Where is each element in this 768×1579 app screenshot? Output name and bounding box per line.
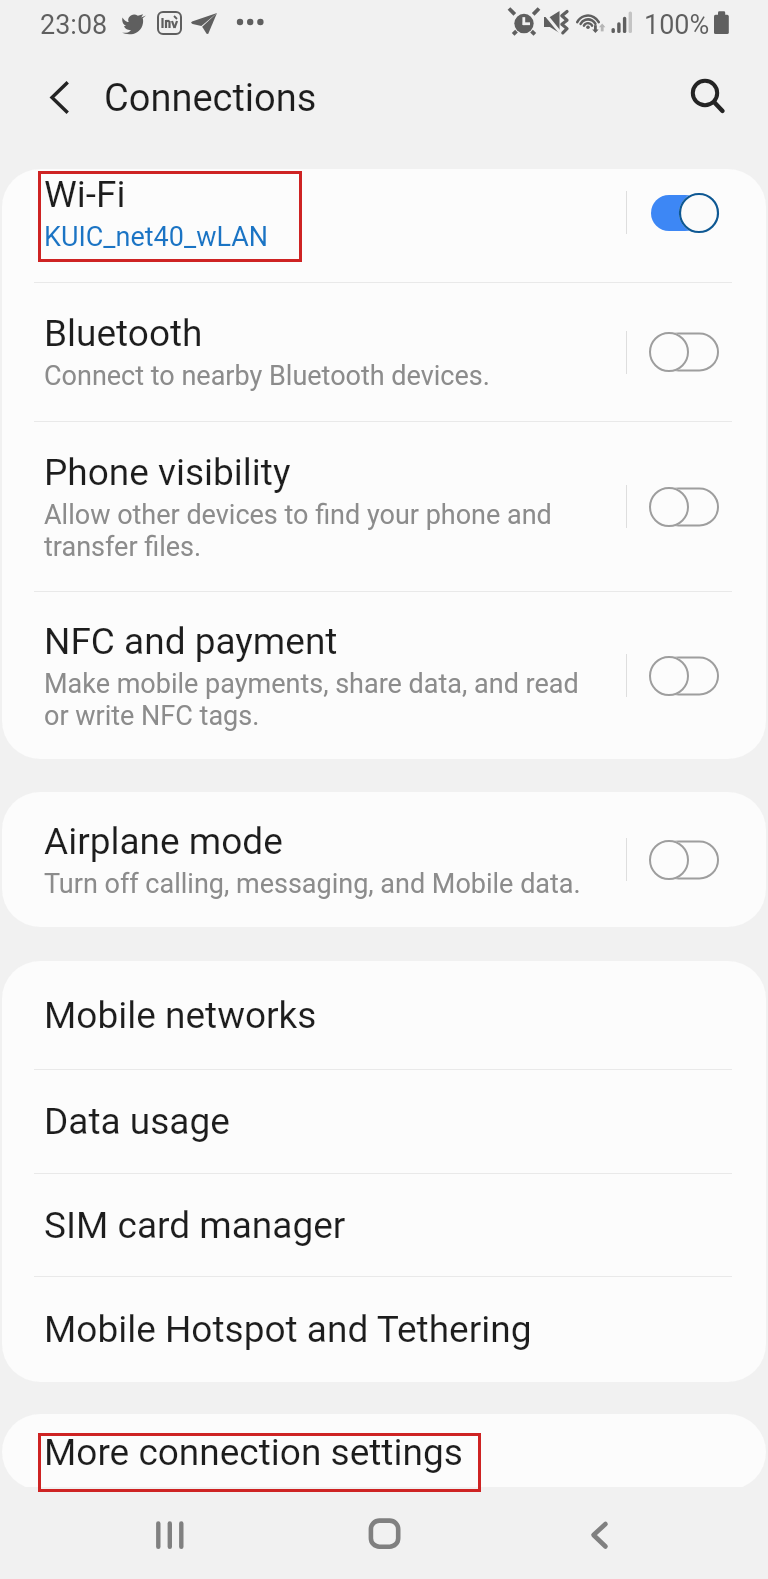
button[interactable]: Back xyxy=(560,1503,640,1563)
button[interactable]: Mobile Hotspot and Tethering xyxy=(2,1277,766,1382)
staticText: Wi-Fi xyxy=(44,173,126,216)
button[interactable]: Phone visibility xyxy=(2,422,766,591)
button[interactable]: More connection settings xyxy=(2,1414,766,1490)
button[interactable]: Recents xyxy=(130,1503,210,1563)
staticText: KUIC_net40_wLAN xyxy=(44,221,269,253)
button[interactable]: Wi-Fi xyxy=(2,169,766,282)
staticText: Phone visibility xyxy=(44,451,291,494)
button[interactable]: SIM card manager xyxy=(2,1174,766,1276)
staticText: NFC and payment xyxy=(44,620,338,663)
button[interactable]: Mobile networks xyxy=(2,961,766,1069)
staticText: Turn off calling, messaging, and Mobile … xyxy=(44,868,581,900)
staticText: Connections xyxy=(104,76,317,121)
staticText: 23:08 xyxy=(40,9,108,41)
button[interactable]: Airplane mode xyxy=(2,792,766,927)
button[interactable]: Off xyxy=(627,649,766,703)
staticText: Allow other devices to find your phone a… xyxy=(44,499,552,562)
button[interactable]: Bluetooth xyxy=(2,283,766,421)
staticText: Connect to nearby Bluetooth devices. xyxy=(44,360,490,392)
button[interactable]: Off xyxy=(627,480,766,534)
button[interactable]: On xyxy=(627,186,766,240)
button[interactable]: Home xyxy=(344,1503,424,1563)
button[interactable]: Search xyxy=(675,64,735,124)
staticText: Airplane mode xyxy=(44,820,283,863)
staticText: Mobile networks xyxy=(44,994,317,1037)
button[interactable]: Off xyxy=(627,833,766,887)
staticText: Data usage xyxy=(44,1100,230,1143)
button[interactable]: NFC and payment xyxy=(2,592,766,759)
staticText: Make mobile payments, share data, and re… xyxy=(44,668,579,731)
staticText: Bluetooth xyxy=(44,312,203,355)
button[interactable]: Data usage xyxy=(2,1070,766,1173)
staticText: Mobile Hotspot and Tethering xyxy=(44,1308,532,1351)
staticText: SIM card manager xyxy=(44,1204,346,1247)
staticText: 100% xyxy=(644,9,710,41)
staticText: More connection settings xyxy=(44,1431,463,1474)
button[interactable]: Off xyxy=(627,325,766,379)
button[interactable]: Back xyxy=(29,64,89,124)
